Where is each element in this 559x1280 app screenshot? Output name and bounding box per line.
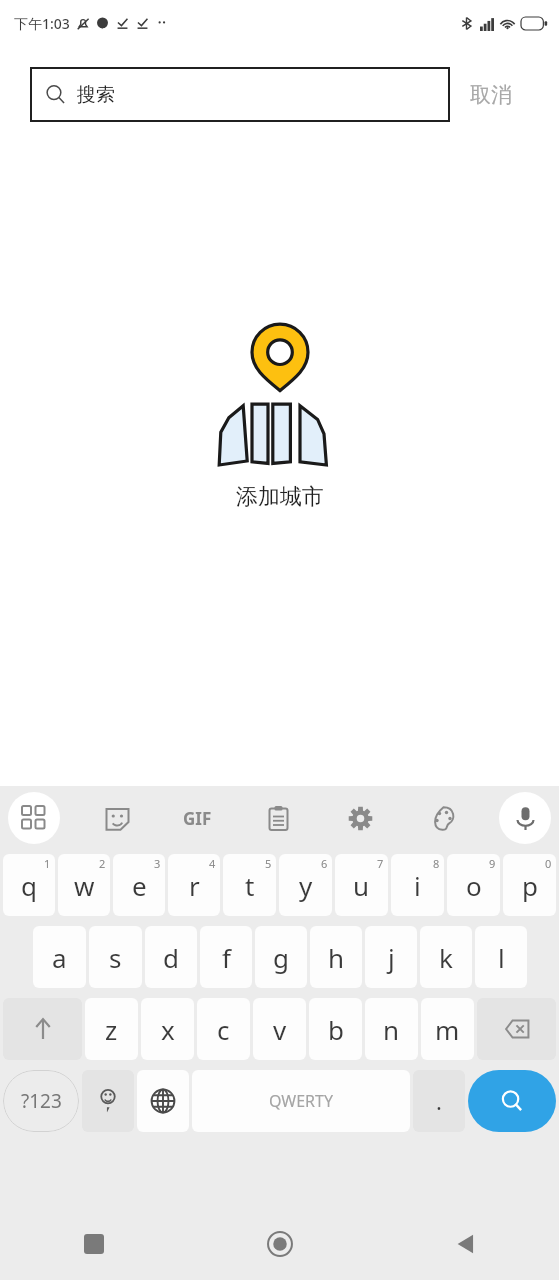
button[interactable]: p <box>503 854 556 916</box>
button[interactable]: v <box>253 998 306 1060</box>
button[interactable]: ?123 <box>3 1070 79 1132</box>
staticText: o <box>466 868 482 903</box>
staticText: r <box>189 868 200 903</box>
staticText: 4 <box>209 856 216 871</box>
staticText: QWERTY <box>269 1090 334 1112</box>
staticText: q <box>21 868 37 903</box>
button[interactable]: 取消 <box>464 74 518 116</box>
button[interactable]: . <box>413 1070 465 1132</box>
button[interactable]: Recent apps <box>0 1208 187 1280</box>
staticText: v <box>273 1012 287 1047</box>
button[interactable]: o <box>447 854 500 916</box>
staticText: 3 <box>154 856 161 871</box>
button[interactable]: j <box>365 926 417 988</box>
button[interactable]: l <box>475 926 527 988</box>
button[interactable]: y <box>279 854 332 916</box>
staticText: a <box>52 940 67 975</box>
button[interactable]: Themes <box>417 792 469 844</box>
staticText: GIF <box>183 807 212 830</box>
staticText: 2 <box>99 856 106 871</box>
button[interactable]: Settings <box>334 792 386 844</box>
staticText: 5 <box>265 856 272 871</box>
staticText: l <box>498 940 505 975</box>
staticText: s <box>109 940 122 975</box>
staticText: 9 <box>489 856 496 871</box>
button[interactable]: c <box>197 998 250 1060</box>
button[interactable]: Apps <box>8 792 60 844</box>
staticText: z <box>105 1012 118 1047</box>
staticText: d <box>163 940 179 975</box>
staticText: b <box>328 1012 344 1047</box>
staticText: f <box>222 940 231 975</box>
staticText: h <box>328 940 345 975</box>
button[interactable]: r <box>168 854 220 916</box>
staticText: . <box>436 1086 442 1116</box>
staticText: 1 <box>44 856 51 871</box>
button[interactable]: z <box>85 998 138 1060</box>
staticText: p <box>522 868 538 903</box>
button[interactable]: 搜索 <box>30 67 450 122</box>
button[interactable]: Change language <box>137 1070 189 1132</box>
staticText: 搜索 <box>77 83 115 107</box>
staticText: i <box>414 868 421 903</box>
staticText: 8 <box>433 856 440 871</box>
staticText: 0 <box>545 856 552 871</box>
button[interactable]: b <box>309 998 362 1060</box>
button[interactable]: d <box>145 926 197 988</box>
button[interactable]: m <box>421 998 474 1060</box>
button[interactable]: x <box>141 998 194 1060</box>
button[interactable]: Clipboard <box>252 792 304 844</box>
button[interactable]: g <box>255 926 307 988</box>
button[interactable]: e <box>113 854 165 916</box>
staticText: c <box>217 1012 230 1047</box>
staticText: ?123 <box>21 1088 62 1114</box>
staticText: w <box>74 868 95 903</box>
staticText: m <box>435 1012 460 1047</box>
button[interactable]: s <box>89 926 142 988</box>
staticText: k <box>439 940 453 975</box>
button[interactable]: w <box>58 854 110 916</box>
button[interactable]: Home <box>187 1208 373 1280</box>
staticText: u <box>353 868 370 903</box>
button[interactable]: f <box>200 926 252 988</box>
button[interactable]: Search <box>468 1070 556 1132</box>
button[interactable]: QWERTY <box>192 1070 410 1132</box>
button[interactable]: t <box>223 854 276 916</box>
button[interactable]: i <box>391 854 444 916</box>
staticText: e <box>132 868 147 903</box>
button[interactable]: GIF <box>173 794 221 842</box>
staticText: t <box>245 868 255 903</box>
button[interactable]: Backspace <box>477 998 556 1060</box>
staticText: 6 <box>321 856 328 871</box>
button[interactable]: Stickers <box>91 792 143 844</box>
staticText: 7 <box>377 856 384 871</box>
button[interactable]: Back <box>373 1208 559 1280</box>
staticText: x <box>161 1012 175 1047</box>
staticText: 添加城市 <box>236 483 324 511</box>
staticText: y <box>299 868 313 903</box>
button[interactable]: q <box>3 854 55 916</box>
staticText: j <box>388 940 395 975</box>
staticText: 下午1:03 <box>14 14 70 33</box>
button[interactable]: Shift <box>3 998 82 1060</box>
button[interactable]: Voice input <box>499 792 551 844</box>
button[interactable]: h <box>310 926 362 988</box>
button[interactable]: k <box>420 926 472 988</box>
button[interactable]: u <box>335 854 388 916</box>
staticText: n <box>383 1012 400 1047</box>
button[interactable]: Emoji <box>82 1070 134 1132</box>
button[interactable]: n <box>365 998 418 1060</box>
staticText: g <box>273 940 289 975</box>
staticText: 取消 <box>470 82 512 108</box>
button[interactable]: a <box>33 926 86 988</box>
